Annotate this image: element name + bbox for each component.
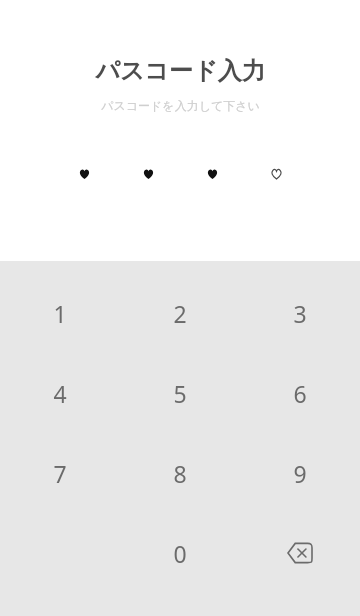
staticText: 3 xyxy=(293,298,307,329)
button[interactable]: 0 xyxy=(120,513,240,593)
staticText: パスコード入力 xyxy=(95,56,266,86)
button[interactable]: 3 xyxy=(240,273,360,353)
staticText: 9 xyxy=(293,458,307,489)
staticText: 5 xyxy=(173,378,187,409)
button[interactable]: 9 xyxy=(240,433,360,513)
button[interactable]: 8 xyxy=(120,433,240,513)
staticText: 2 xyxy=(173,298,187,329)
button[interactable]: 6 xyxy=(240,353,360,433)
button[interactable]: 5 xyxy=(120,353,240,433)
staticText: 0 xyxy=(173,538,187,569)
staticText: 7 xyxy=(53,458,67,489)
button[interactable]: Delete xyxy=(240,513,360,593)
staticText: パスコードを入力して下さい xyxy=(101,98,260,113)
button[interactable]: 4 xyxy=(0,353,120,433)
staticText: 8 xyxy=(173,458,187,489)
button[interactable]: 2 xyxy=(120,273,240,353)
staticText: 1 xyxy=(53,298,67,329)
button[interactable]: 7 xyxy=(0,433,120,513)
button[interactable]: 1 xyxy=(0,273,120,353)
staticText: 6 xyxy=(293,378,307,409)
staticText: 4 xyxy=(53,378,67,409)
